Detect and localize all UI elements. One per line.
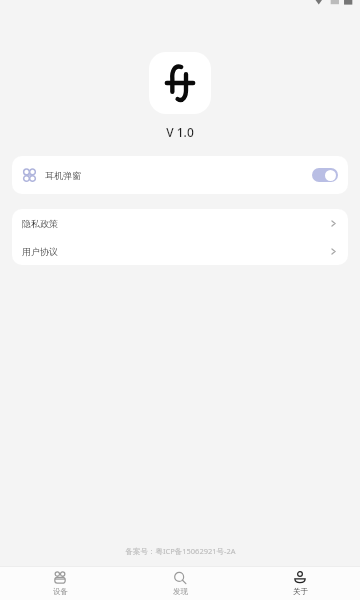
staticText: 设备	[53, 587, 68, 596]
staticText: 备案号：粤ICP备15062921号-2A	[125, 546, 236, 556]
button[interactable]: 隐私政策	[12, 209, 348, 237]
button[interactable]: 耳机弹窗	[12, 156, 348, 194]
other: About	[293, 571, 307, 585]
staticText: 用户协议	[22, 246, 58, 257]
other: Devices	[53, 571, 67, 585]
staticText: 发现	[173, 587, 188, 596]
button[interactable]: 用户协议	[12, 237, 348, 265]
button[interactable]: Toggle earphone popup	[312, 168, 338, 182]
button[interactable]: Discover	[120, 567, 240, 600]
button[interactable]: About	[240, 567, 360, 600]
button[interactable]: Devices	[0, 567, 120, 600]
staticText: 耳机弹窗	[45, 170, 81, 181]
staticText: 隐私政策	[22, 218, 58, 229]
other: Discover	[173, 571, 187, 585]
staticText: V 1.0	[166, 124, 194, 140]
staticText: 关于	[293, 587, 308, 596]
